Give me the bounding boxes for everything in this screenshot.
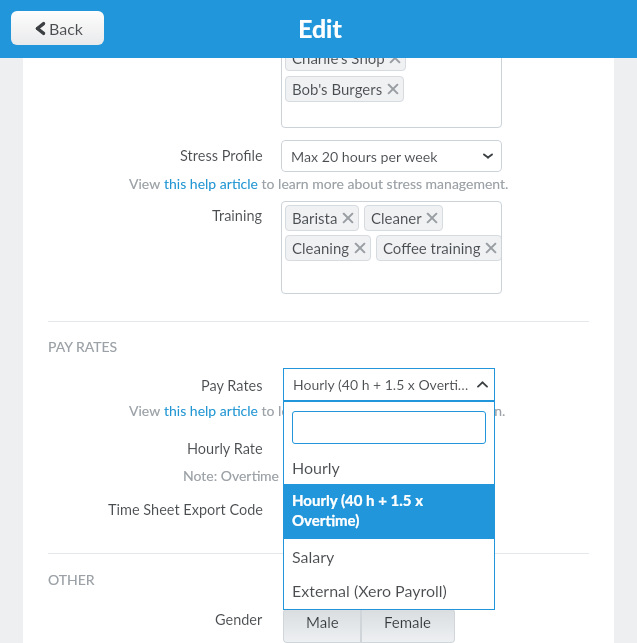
staticText: Overtime)	[292, 511, 360, 529]
other: Remove	[390, 53, 400, 63]
staticText: Hourly	[292, 458, 340, 477]
other: Back	[36, 22, 45, 35]
button[interactable]: Salary	[283, 539, 495, 573]
button[interactable]: Female	[361, 609, 455, 643]
other: Remove	[355, 243, 365, 253]
button[interactable]: Hourly (40 h + 1.5 x	[283, 484, 495, 539]
staticText: Note: Overtime rates only apply to hourl…	[183, 467, 472, 484]
staticText: Hourly (40 h + 1.5 x Overti…	[293, 376, 469, 393]
button[interactable]: Charlie's Shop	[285, 45, 406, 71]
button[interactable]: Male	[283, 609, 361, 643]
staticText: Hourly Rate	[187, 440, 263, 457]
staticText: Max 20 hours per week	[291, 148, 438, 165]
staticText: Female	[384, 613, 432, 631]
other: Remove	[388, 84, 398, 94]
other: Remove	[486, 243, 496, 253]
button[interactable]	[292, 411, 486, 444]
button[interactable]: Cleaner	[364, 205, 443, 231]
staticText: OTHER	[48, 571, 95, 588]
staticText: to learn more about stress management.	[258, 175, 509, 192]
button[interactable]: Back	[11, 11, 104, 45]
other: Remove	[343, 213, 353, 223]
staticText: PAY RATES	[48, 338, 118, 355]
staticText: Coffee training	[383, 239, 481, 257]
staticText: Male	[306, 613, 339, 631]
button[interactable]: Max 20 hours per week	[281, 140, 502, 172]
staticText: this help article	[164, 175, 258, 192]
staticText: Training	[212, 207, 263, 224]
staticText: External (Xero Payroll)	[292, 581, 447, 600]
staticText: Salary	[292, 547, 335, 566]
staticText: Time Sheet Export Code	[108, 501, 263, 518]
staticText: Back	[49, 19, 83, 38]
button[interactable]: External (Xero Payroll)	[283, 573, 495, 610]
staticText: Hourly (40 h + 1.5 x	[292, 491, 423, 509]
staticText: View	[129, 402, 164, 419]
staticText: this help article	[164, 402, 258, 419]
staticText: Pay Rates	[201, 377, 263, 394]
button[interactable]: Bob's Burgers	[285, 76, 404, 102]
staticText: to learn more about rates configuration.	[258, 402, 506, 419]
staticText: Bob's Burgers	[292, 80, 383, 98]
staticText: Barista	[292, 209, 338, 227]
button[interactable]: Hourly	[283, 450, 495, 484]
staticText: Gender	[215, 611, 263, 628]
button[interactable]: Coffee training	[376, 235, 502, 261]
button[interactable]: Barista	[285, 205, 359, 231]
staticText: View	[129, 175, 164, 192]
staticText: Stress Profile	[180, 147, 263, 164]
staticText: Charlie's Shop	[292, 49, 385, 67]
other: Remove	[427, 213, 437, 223]
button[interactable]: Cleaning	[285, 235, 371, 261]
button[interactable]: Hourly (40 h + 1.5 x Overti…	[283, 368, 495, 401]
staticText: Cleaning	[292, 239, 350, 257]
staticText: Cleaner	[371, 209, 422, 227]
staticText: Edit	[298, 13, 342, 43]
